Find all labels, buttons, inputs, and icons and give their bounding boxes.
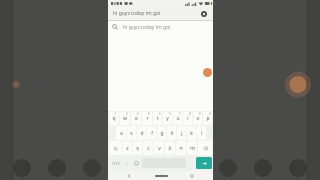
button[interactable]: b — [165, 141, 175, 155]
button[interactable]: Recent apps — [186, 172, 198, 180]
button[interactable]: d — [137, 126, 146, 140]
button[interactable]: Search — [196, 157, 212, 169]
button[interactable]: a — [116, 126, 126, 140]
button[interactable]: 2 — [120, 112, 130, 125]
button[interactable]: z — [123, 141, 132, 155]
staticText: 8 — [189, 112, 191, 116]
button[interactable]: 3 — [131, 112, 141, 125]
button[interactable]: Compose — [203, 68, 212, 77]
button[interactable]: / — [123, 156, 131, 170]
staticText: 3 — [137, 112, 139, 116]
staticText: b — [168, 145, 172, 152]
staticText: x — [136, 145, 139, 152]
button[interactable]: ?123 — [109, 156, 122, 170]
button[interactable]: m — [187, 141, 197, 155]
staticText: d — [140, 130, 144, 137]
staticText: c — [147, 145, 150, 152]
button[interactable]: f — [147, 126, 156, 140]
staticText: u — [176, 115, 180, 122]
button[interactable]: 7 — [173, 112, 182, 125]
button[interactable]: g — [157, 126, 166, 140]
button[interactable]: h — [167, 126, 176, 140]
staticText: k — [190, 130, 193, 137]
staticText: 5 — [159, 112, 161, 116]
button[interactable]: Shift — [109, 141, 122, 155]
button[interactable]: Back — [123, 172, 135, 180]
button[interactable]: v — [154, 141, 164, 155]
staticText: h — [170, 130, 174, 137]
button[interactable]: Emoji — [132, 156, 141, 170]
staticText: / — [126, 161, 128, 166]
staticText: s — [130, 130, 133, 137]
button[interactable]: hi guys today im goi — [108, 21, 213, 33]
staticText: 6 — [169, 112, 171, 116]
staticText: e — [135, 115, 138, 122]
staticText: j — [181, 130, 183, 137]
button[interactable]: Clear query — [200, 10, 208, 18]
staticText: g — [160, 130, 164, 137]
staticText: v — [158, 145, 161, 152]
staticText: z — [126, 145, 129, 152]
button[interactable]: k — [187, 126, 196, 140]
button[interactable]: c — [143, 141, 153, 155]
staticText: l — [201, 130, 203, 137]
staticText: p — [206, 115, 210, 122]
button[interactable]: hi guys today im goi — [110, 8, 211, 19]
button[interactable]: 4 — [142, 112, 152, 125]
staticText: a — [120, 130, 123, 137]
button[interactable]: Backspace — [198, 141, 212, 155]
staticText: n — [179, 145, 183, 152]
staticText: 1 — [115, 112, 117, 116]
staticText: q — [112, 115, 116, 122]
staticText: m — [190, 145, 195, 152]
staticText: 2 — [126, 112, 128, 116]
staticText: . — [190, 161, 192, 166]
staticText: hi guys today im goi — [113, 10, 200, 17]
button[interactable]: 6 — [163, 112, 172, 125]
staticText: t — [157, 115, 159, 122]
staticText: w — [123, 115, 127, 122]
button[interactable]: 8 — [183, 112, 192, 125]
staticText: hi guys today im goi — [123, 24, 171, 31]
button[interactable]: 5 — [153, 112, 162, 125]
staticText: i — [187, 115, 189, 122]
button[interactable]: 0 — [203, 112, 212, 125]
staticText: y — [166, 115, 169, 122]
staticText: 9 — [199, 112, 201, 116]
button[interactable]: s — [127, 126, 136, 140]
button[interactable]: n — [176, 141, 186, 155]
button[interactable]: l — [197, 126, 206, 140]
button[interactable]: j — [177, 126, 186, 140]
button[interactable]: x — [133, 141, 142, 155]
staticText: 4 — [148, 112, 150, 116]
button[interactable]: 9 — [193, 112, 202, 125]
button[interactable]: 1 — [109, 112, 119, 125]
button[interactable]: Home — [151, 172, 171, 180]
staticText: o — [196, 115, 200, 122]
staticText: f — [151, 130, 153, 137]
staticText: ?123 — [112, 161, 120, 166]
staticText: 7 — [179, 112, 181, 116]
staticText: r — [146, 115, 149, 122]
staticText: 0 — [209, 112, 211, 116]
